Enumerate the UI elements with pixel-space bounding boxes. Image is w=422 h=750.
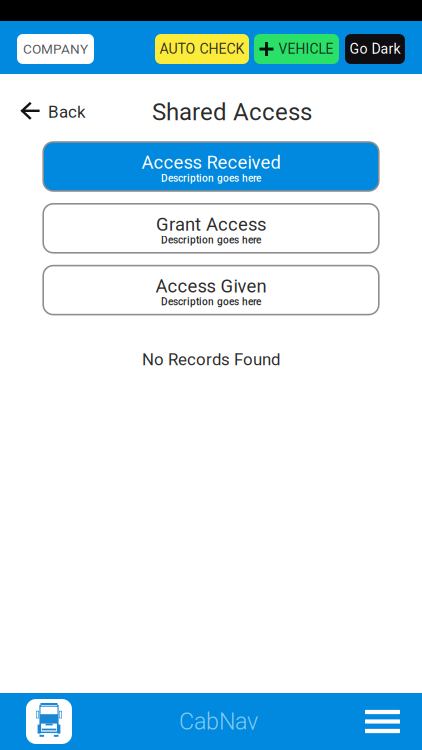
button[interactable]: Access Given: [43, 266, 379, 315]
button[interactable]: VEHICLE: [254, 34, 339, 64]
staticText: Shared Access: [152, 98, 312, 126]
staticText: CabNav: [179, 708, 258, 735]
button[interactable]: Menu: [365, 710, 400, 733]
button[interactable]: CabNav home: [26, 699, 72, 744]
staticText: Access Received: [141, 152, 280, 173]
staticText: Description goes here: [161, 234, 261, 246]
staticText: AUTO CHECK: [159, 41, 244, 57]
staticText: No Records Found: [142, 350, 280, 369]
button[interactable]: Access Received: [43, 142, 379, 191]
button[interactable]: Grant Access: [43, 204, 379, 253]
button[interactable]: Go Dark: [345, 34, 405, 64]
staticText: Grant Access: [156, 214, 266, 235]
staticText: COMPANY: [23, 41, 88, 57]
staticText: VEHICLE: [278, 41, 333, 57]
staticText: Go Dark: [349, 41, 400, 57]
button[interactable]: COMPANY: [17, 34, 94, 64]
button[interactable]: AUTO CHECK: [155, 34, 249, 64]
staticText: Access Given: [155, 275, 266, 297]
staticText: Description goes here: [161, 296, 261, 308]
button[interactable]: Back: [21, 102, 86, 122]
staticText: Description goes here: [161, 172, 261, 184]
staticText: Back: [48, 102, 86, 122]
